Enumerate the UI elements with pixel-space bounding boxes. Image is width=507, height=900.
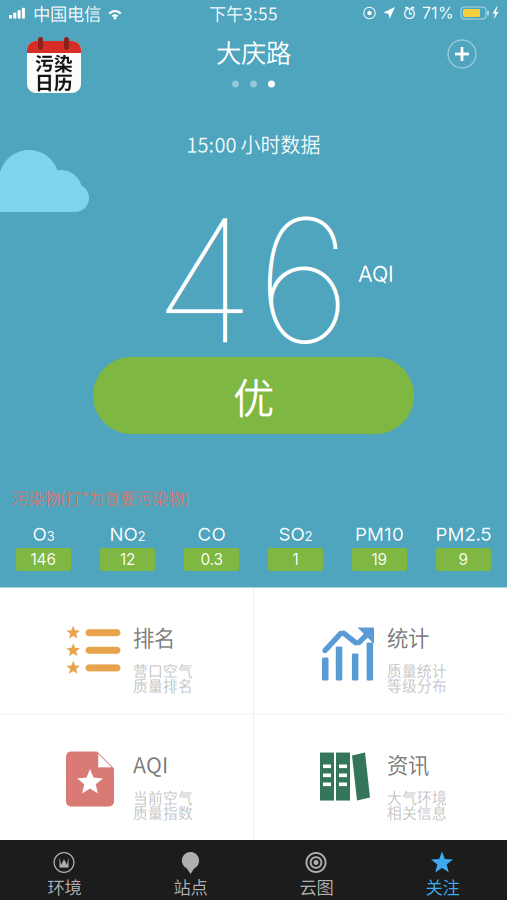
staticText: 46 xyxy=(153,177,351,383)
button[interactable]: 站点 xyxy=(127,840,253,900)
staticText: 下午3:55 xyxy=(209,0,278,26)
staticText: NO xyxy=(109,523,137,545)
staticText: 15:00 小时数据 xyxy=(186,129,320,158)
button[interactable]: 环境 xyxy=(1,840,127,900)
button[interactable]: Add location xyxy=(439,31,485,77)
staticText: 关注 xyxy=(425,874,459,899)
staticText: PM10 xyxy=(355,523,404,545)
staticText: PM2.5 xyxy=(435,523,491,545)
staticText: 71% xyxy=(422,3,454,23)
staticText: SO xyxy=(278,523,304,545)
staticText: 站点 xyxy=(173,874,207,899)
staticText: O xyxy=(32,523,46,545)
button[interactable]: 优 xyxy=(93,357,414,434)
staticText: AQI xyxy=(133,748,168,779)
staticText: 污染 xyxy=(35,49,73,76)
button[interactable]: 排名 xyxy=(0,587,253,713)
staticText: 相关信息 xyxy=(387,801,447,823)
staticText: 中国电信 xyxy=(33,0,101,26)
staticText: 等级分布 xyxy=(387,674,447,696)
staticText: 污染物(打*为首要污染物) xyxy=(12,486,189,509)
staticText: 资讯 xyxy=(387,748,429,779)
staticText: 12 xyxy=(120,550,135,569)
staticText: 1 xyxy=(292,550,298,569)
button[interactable]: 关注 xyxy=(379,840,505,900)
staticText: 质量统计 xyxy=(387,659,447,681)
staticText: 环境 xyxy=(47,874,81,899)
staticText: 优 xyxy=(233,366,274,425)
staticText: 当前空气 xyxy=(133,786,193,808)
button[interactable]: 资讯 xyxy=(254,714,507,840)
staticText: 质量指数 xyxy=(133,801,193,823)
staticText: 2 xyxy=(304,528,312,544)
staticText: 0.3 xyxy=(200,550,222,569)
staticText: 质量排名 xyxy=(133,674,193,696)
button[interactable]: 统计 xyxy=(254,587,507,713)
staticText: 大气环境 xyxy=(387,786,447,808)
button[interactable]: AQI xyxy=(0,714,253,840)
staticText: 统计 xyxy=(387,621,429,652)
staticText: 日历 xyxy=(35,68,73,95)
staticText: 146 xyxy=(30,550,56,569)
staticText: 3 xyxy=(46,528,54,544)
staticText: 大庆路 xyxy=(216,33,291,70)
staticText: 2 xyxy=(137,528,145,544)
staticText: 排名 xyxy=(133,621,175,652)
staticText: 19 xyxy=(371,550,387,569)
staticText: CO xyxy=(197,523,225,545)
staticText: 云图 xyxy=(299,874,333,899)
staticText: AQI xyxy=(358,261,394,287)
staticText: 营口空气 xyxy=(133,659,193,681)
button[interactable]: 云图 xyxy=(253,840,379,900)
staticText: 9 xyxy=(458,550,468,569)
